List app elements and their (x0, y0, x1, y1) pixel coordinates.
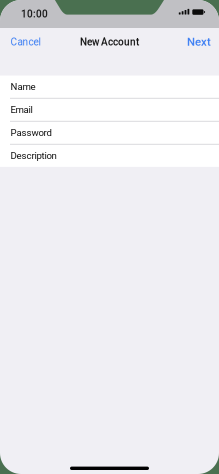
button[interactable]: Next (181, 28, 219, 56)
button[interactable]: Cancel (0, 29, 47, 55)
button[interactable]: Description (0, 144, 219, 167)
staticText: Email (10, 104, 32, 115)
staticText: Name (10, 81, 35, 92)
button[interactable]: Name (0, 75, 219, 98)
staticText: Description (10, 150, 56, 161)
staticText: Password (10, 127, 51, 138)
staticText: 10:00 (21, 8, 48, 20)
staticText: Next (187, 35, 211, 49)
staticText: New Account (80, 36, 139, 48)
button[interactable]: Email (0, 98, 219, 121)
staticText: Cancel (11, 36, 41, 48)
button[interactable]: Password (0, 121, 219, 144)
